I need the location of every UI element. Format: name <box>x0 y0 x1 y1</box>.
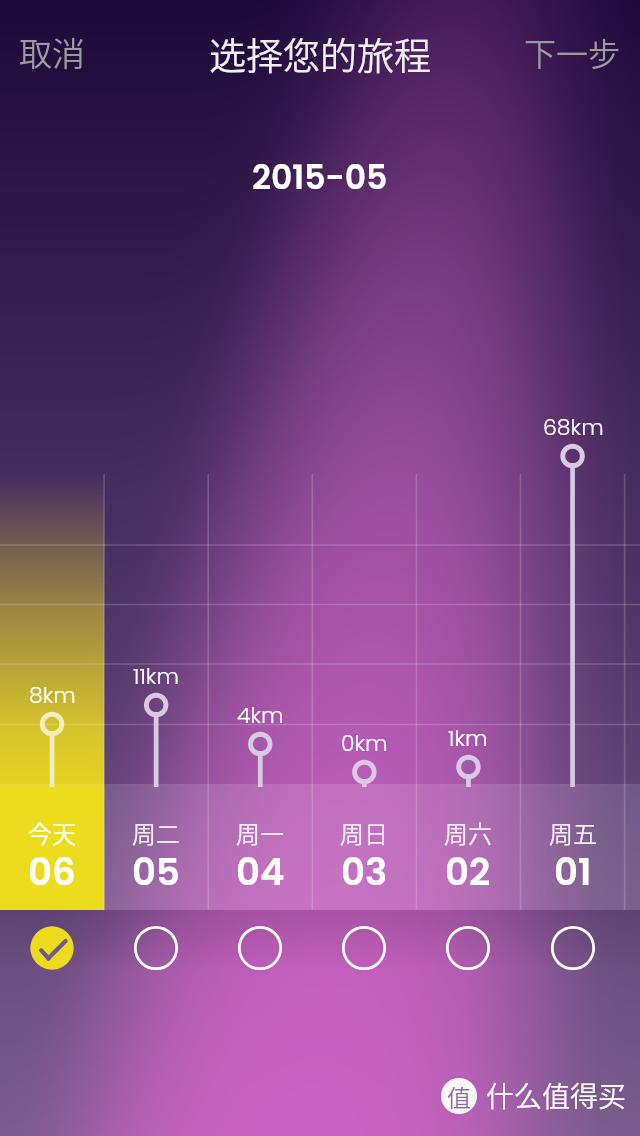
button[interactable] <box>416 786 520 910</box>
staticText: 周一 <box>236 815 284 850</box>
staticText: 周五 <box>549 815 597 850</box>
staticText: 周日 <box>340 815 388 850</box>
button[interactable] <box>104 786 208 910</box>
button[interactable]: Select day 05 <box>123 915 189 981</box>
staticText: 02 <box>445 846 491 898</box>
staticText: 2015-05 <box>252 154 388 200</box>
staticText: 选择您的旅程 <box>209 27 431 81</box>
button[interactable]: 取消 <box>13 22 91 82</box>
button[interactable]: Select day 03 <box>331 915 397 981</box>
staticText: 下一步 <box>524 29 621 75</box>
staticText: 68km <box>543 412 604 443</box>
staticText: 值 <box>447 1079 471 1114</box>
button[interactable]: 下一步 <box>518 23 627 81</box>
staticText: 0km <box>341 728 388 759</box>
staticText: 06 <box>28 846 76 898</box>
button[interactable] <box>0 786 104 910</box>
button[interactable] <box>521 786 625 910</box>
staticText: 周六 <box>444 815 492 850</box>
button[interactable] <box>312 786 416 910</box>
staticText: 周二 <box>132 815 180 850</box>
staticText: 4km <box>237 700 284 731</box>
staticText: 11km <box>133 661 179 692</box>
staticText: 04 <box>236 846 285 898</box>
staticText: 取消 <box>19 28 85 76</box>
staticText: 8km <box>29 680 76 711</box>
button[interactable]: Selected day 06 <box>19 915 85 981</box>
button[interactable]: Select day 01 <box>540 915 606 981</box>
button[interactable]: Select day 02 <box>435 915 501 981</box>
button[interactable] <box>208 786 312 910</box>
staticText: 03 <box>341 846 388 898</box>
staticText: 01 <box>554 846 592 898</box>
staticText: 05 <box>132 846 180 898</box>
staticText: 1km <box>448 723 488 754</box>
staticText: 今天 <box>28 815 76 850</box>
staticText: 什么值得买 <box>486 1075 627 1116</box>
button[interactable]: Select day 04 <box>227 915 293 981</box>
